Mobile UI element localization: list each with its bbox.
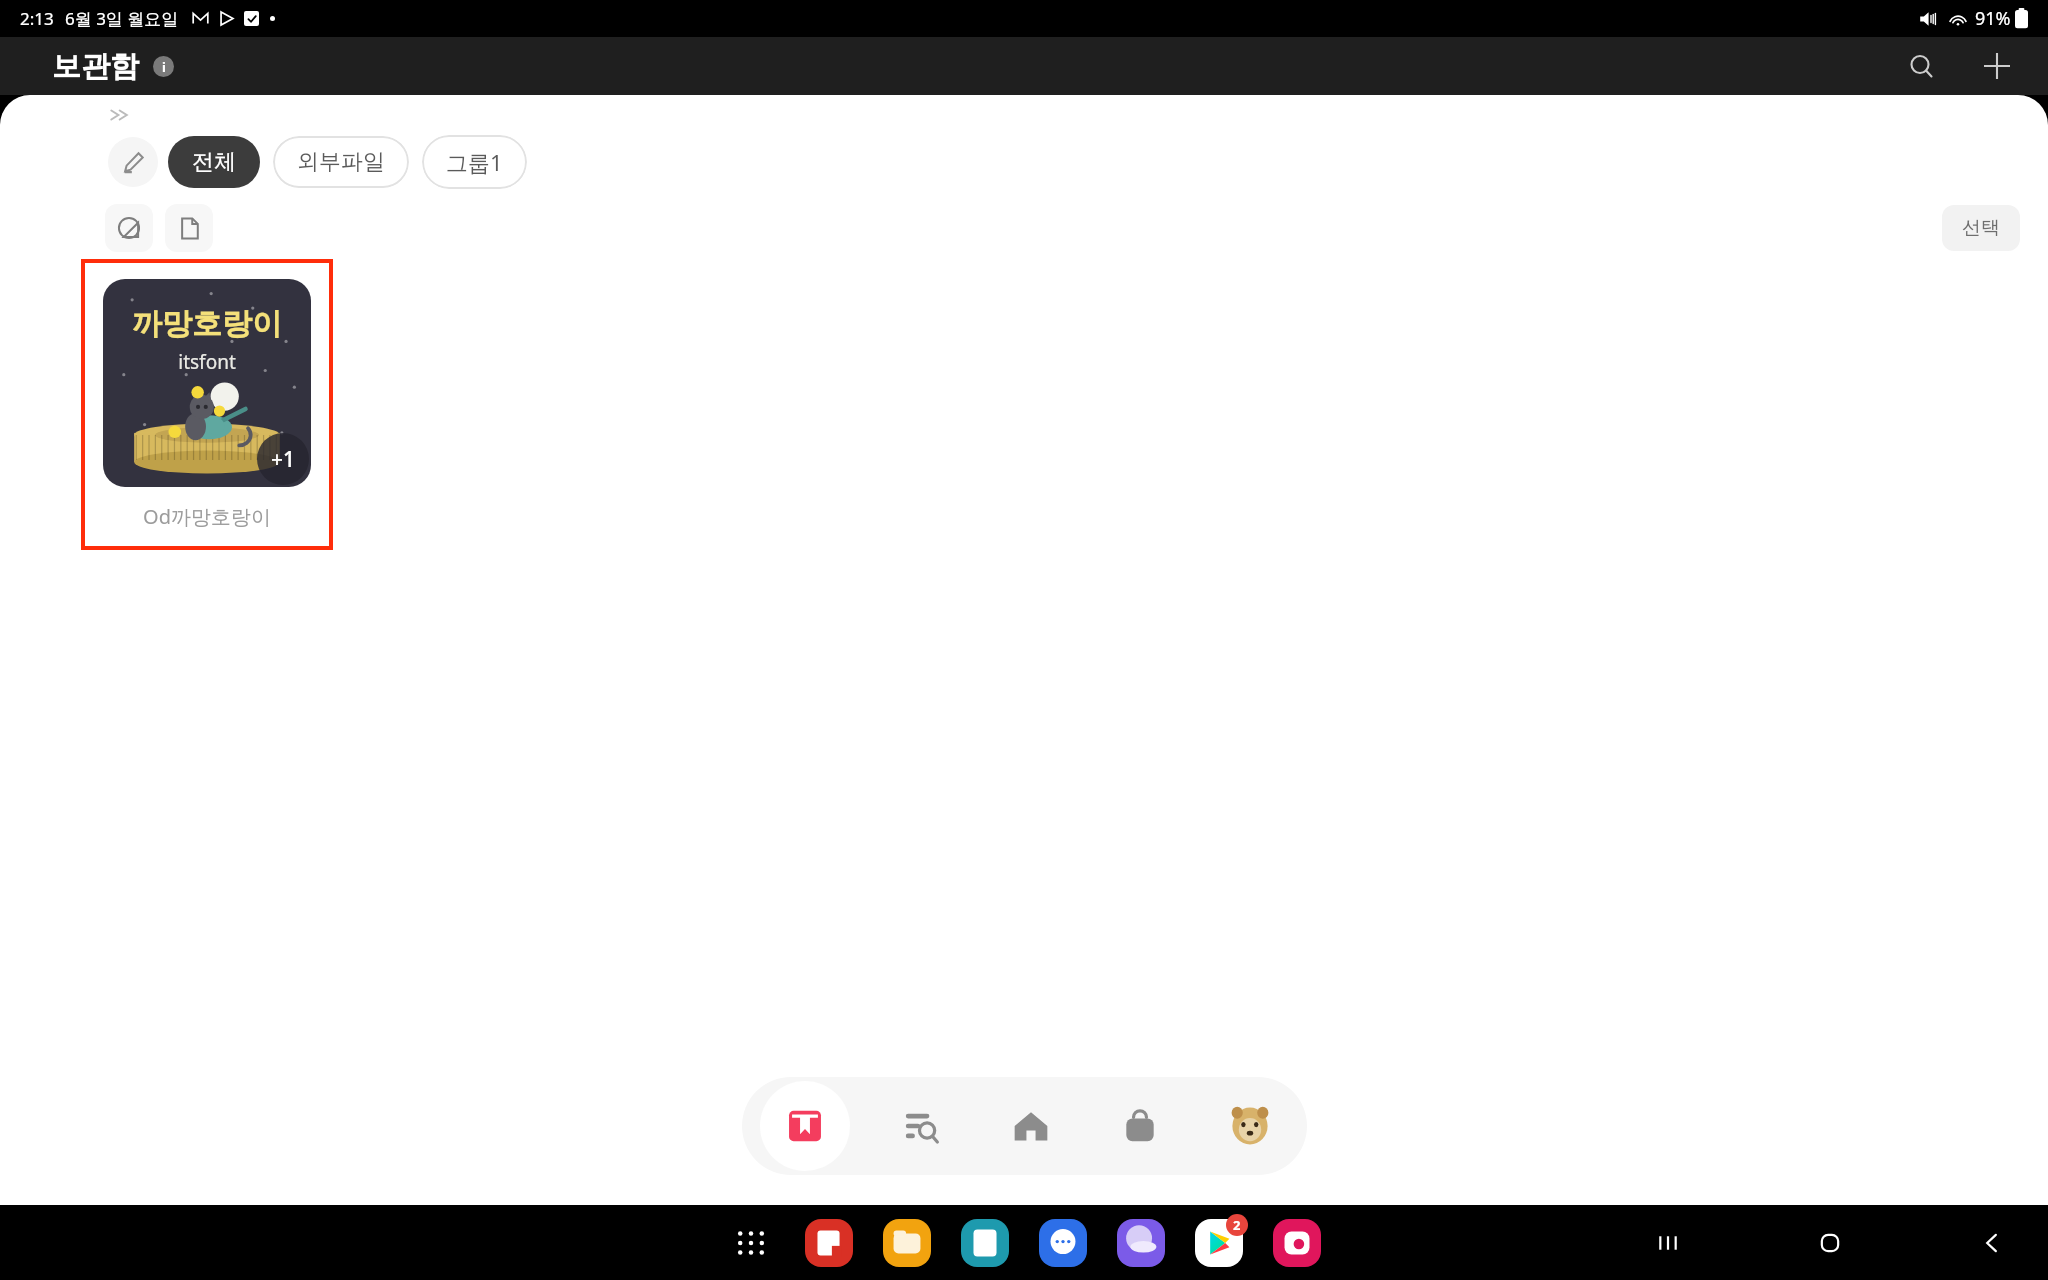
button[interactable]: 까망호랑이 xyxy=(85,263,329,546)
staticText: 전체 xyxy=(192,148,236,176)
button[interactable]: 앱 xyxy=(878,1214,936,1272)
button[interactable]: 홈 xyxy=(1804,1217,1856,1269)
button[interactable]: 앱 xyxy=(1112,1214,1170,1272)
button[interactable]: 검색 xyxy=(1898,43,1944,89)
button[interactable]: 최근 앱 xyxy=(1642,1217,1694,1269)
staticText: 91% xyxy=(1975,6,2011,31)
button[interactable]: 앱 xyxy=(956,1214,1014,1272)
button[interactable]: 스토어 xyxy=(1101,1087,1179,1165)
staticText: 6월 3일 월요일 xyxy=(65,7,179,30)
button[interactable]: 앱스 xyxy=(722,1214,780,1272)
button[interactable]: 앱 xyxy=(1268,1214,1326,1272)
button[interactable]: 보관함 xyxy=(760,1081,850,1171)
button[interactable]: 앱 xyxy=(800,1214,858,1272)
button[interactable]: 프로필 xyxy=(1211,1087,1289,1165)
staticText: +1 xyxy=(271,445,296,474)
staticText: itsfont xyxy=(178,349,236,375)
button[interactable]: 선택 xyxy=(1942,205,2020,251)
staticText: 2:13 xyxy=(20,7,54,30)
button[interactable]: 추가 xyxy=(1974,43,2020,89)
staticText: 선택 xyxy=(1962,216,2000,240)
button[interactable]: 보기 변경 xyxy=(105,204,153,252)
staticText: 2 xyxy=(1233,1216,1241,1234)
button[interactable]: 정보 xyxy=(153,56,174,77)
button[interactable]: 그룹1 xyxy=(422,135,527,189)
staticText: 외부파일 xyxy=(297,148,385,176)
staticText: 그룹1 xyxy=(446,147,503,177)
button[interactable]: 앱 xyxy=(1034,1214,1092,1272)
staticText: Od까망호랑이 xyxy=(143,503,271,530)
staticText: i xyxy=(162,58,166,76)
button[interactable]: 뒤로 xyxy=(1966,1217,2018,1269)
staticText: 보관함 xyxy=(52,48,139,85)
button[interactable]: 편집 xyxy=(108,137,158,187)
button[interactable]: 파일 xyxy=(165,204,213,252)
button[interactable]: 전체 xyxy=(168,136,260,188)
button[interactable]: 서치 xyxy=(882,1087,960,1165)
staticText: 까망호랑이 xyxy=(132,305,282,343)
button[interactable]: 외부파일 xyxy=(273,136,409,188)
button[interactable]: Play 스토어 xyxy=(1190,1214,1248,1272)
button[interactable]: 홈 xyxy=(992,1087,1070,1165)
